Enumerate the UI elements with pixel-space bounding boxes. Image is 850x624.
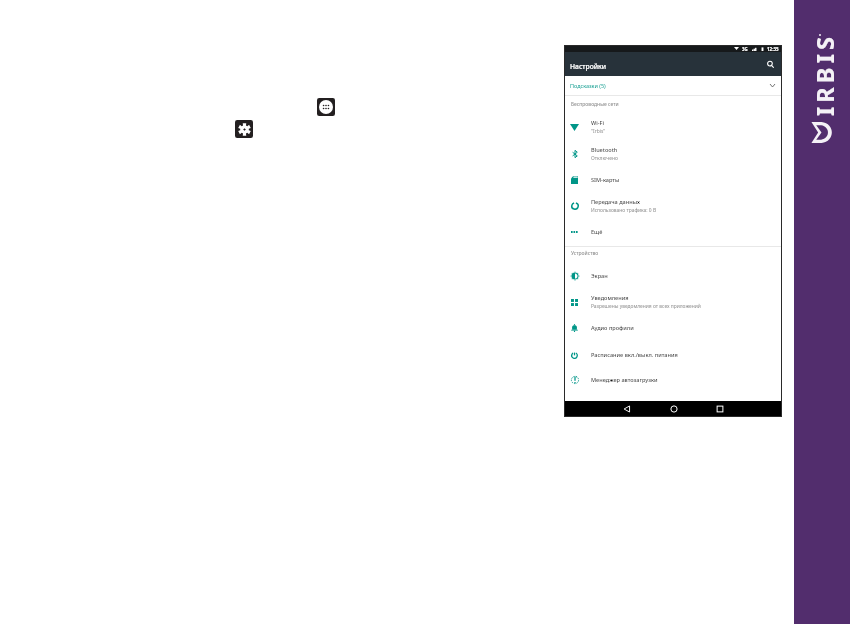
staticText: "Irbis"	[591, 128, 606, 135]
staticText: 3G	[742, 46, 748, 52]
button[interactable]: Менеджер автозагрузки	[564, 367, 782, 393]
button[interactable]: Подсказки (5)	[564, 77, 782, 96]
staticText: Разрешены уведомления от всех приложений	[591, 303, 701, 310]
staticText: Менеджер автозагрузки	[591, 376, 658, 384]
staticText: Настройки	[570, 62, 607, 71]
staticText: IRBIS	[809, 32, 835, 116]
button[interactable]: Settings	[235, 120, 253, 138]
staticText: SIM-карты	[591, 176, 620, 184]
staticText: Расписание вкл./выкл. питания	[591, 351, 678, 359]
button[interactable]: Apps	[317, 98, 335, 116]
button[interactable]: Search	[762, 56, 778, 72]
button[interactable]: Передача данных	[564, 193, 782, 219]
staticText: Аудио профили	[591, 324, 634, 332]
staticText: Экран	[591, 272, 608, 280]
staticText: 12:35	[767, 46, 779, 52]
button[interactable]: Back	[619, 401, 635, 417]
button[interactable]: Wi-Fi	[564, 114, 782, 140]
button[interactable]: Аудио профили	[564, 315, 782, 341]
staticText: Передача данных	[591, 198, 641, 206]
staticText: Bluetooth	[591, 146, 618, 154]
button[interactable]: Recents	[712, 401, 728, 417]
button[interactable]: Home	[666, 401, 682, 417]
button[interactable]: Ещё	[564, 219, 782, 245]
staticText: Беспроводные сети	[571, 101, 619, 108]
button[interactable]: Экран	[564, 263, 782, 289]
staticText: Устройство	[571, 250, 599, 257]
staticText: Подсказки (5)	[570, 82, 606, 89]
staticText: Использовано трафика: 0 B	[591, 207, 657, 214]
button[interactable]: Уведомления	[564, 289, 782, 315]
staticText: Wi-Fi	[591, 119, 604, 127]
staticText: Уведомления	[591, 294, 629, 302]
button[interactable]: SIM-карты	[564, 167, 782, 193]
button[interactable]: Bluetooth	[564, 141, 782, 167]
button[interactable]: Расписание вкл./выкл. питания	[564, 342, 782, 368]
staticText: Ещё	[591, 228, 603, 236]
staticText: Отключено	[591, 155, 618, 162]
